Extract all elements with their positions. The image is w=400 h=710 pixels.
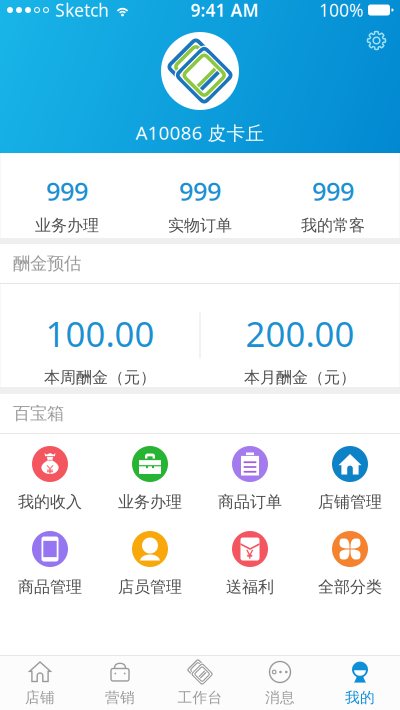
staticText: 店铺管理 <box>318 492 382 512</box>
staticText: 我的收入 <box>18 492 82 512</box>
button[interactable]: Settings <box>359 23 394 58</box>
staticText: 工作台 <box>177 688 222 706</box>
staticText: 999 <box>312 174 354 208</box>
button[interactable]: 全部分类 <box>300 519 400 604</box>
staticText: 全部分类 <box>318 577 382 597</box>
staticText: A10086 皮卡丘 <box>135 120 264 145</box>
staticText: 送福利 <box>226 577 274 597</box>
staticText: 999 <box>46 174 88 208</box>
staticText: 业务办理 <box>118 492 182 512</box>
button[interactable]: 999 <box>0 153 133 238</box>
staticText: 100.00 <box>45 311 154 357</box>
button[interactable]: 业务办理 <box>100 434 200 519</box>
button[interactable]: 商品管理 <box>0 519 100 604</box>
button[interactable]: 店铺管理 <box>300 434 400 519</box>
staticText: 店员管理 <box>118 577 182 597</box>
staticText: 店铺 <box>25 688 55 706</box>
button[interactable]: 工作台 <box>160 656 240 710</box>
staticText: 百宝箱 <box>13 403 64 424</box>
staticText: ¥ <box>246 545 254 562</box>
staticText: 我的常客 <box>301 216 365 235</box>
staticText: 实物订单 <box>168 216 232 235</box>
button[interactable]: 999 <box>133 153 266 238</box>
button[interactable]: 店员管理 <box>100 519 200 604</box>
staticText: 本月酬金（元） <box>244 368 356 387</box>
staticText: 业务办理 <box>35 216 99 235</box>
staticText: 9:41 AM <box>190 0 258 21</box>
button[interactable]: 999 <box>266 153 399 238</box>
staticText: 酬金预估 <box>13 253 81 274</box>
button[interactable]: 我的 <box>320 656 400 710</box>
button[interactable]: 店铺 <box>0 656 80 710</box>
button[interactable]: 商品订单 <box>200 434 300 519</box>
staticText: 商品订单 <box>218 492 282 512</box>
button[interactable]: 我的收入 <box>0 434 100 519</box>
staticText: 消息 <box>265 688 295 706</box>
staticText: 商品管理 <box>18 577 82 597</box>
staticText: 200.00 <box>245 311 354 357</box>
staticText: Sketch <box>55 0 109 21</box>
button[interactable]: ¥ <box>200 519 300 604</box>
button[interactable]: 消息 <box>240 656 320 710</box>
staticText: 100% <box>319 0 363 21</box>
staticText: 营销 <box>105 688 135 706</box>
staticText: 本周酬金（元） <box>44 368 156 387</box>
staticText: 999 <box>179 174 221 208</box>
staticText: 我的 <box>345 688 375 706</box>
button[interactable]: 营销 <box>80 656 160 710</box>
